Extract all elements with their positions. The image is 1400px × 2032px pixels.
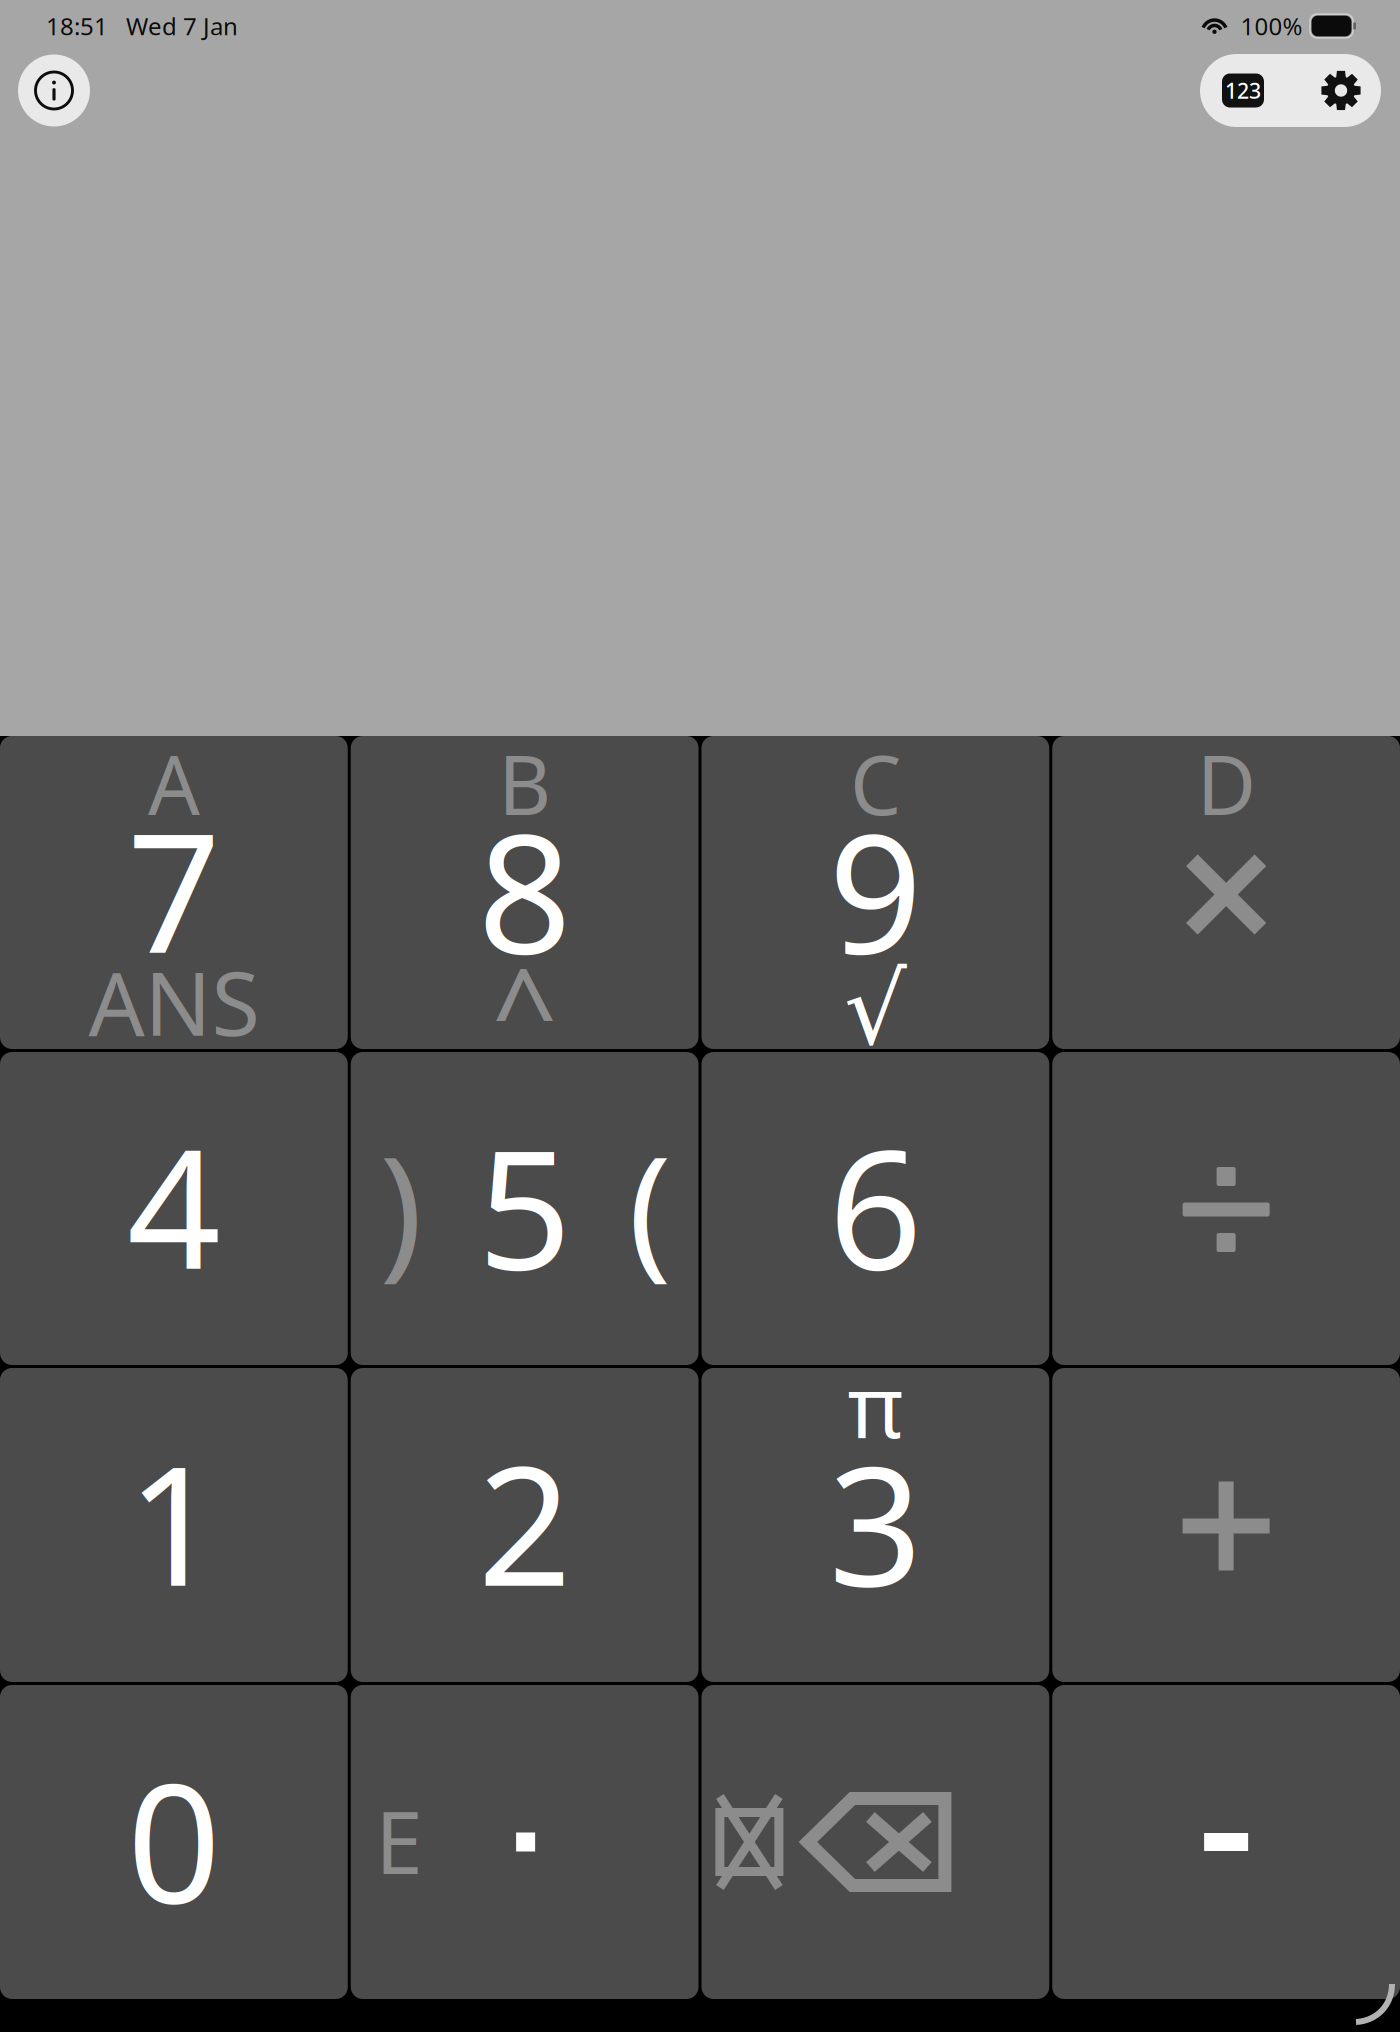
staticText: 9 xyxy=(828,781,922,998)
staticText: ^ xyxy=(492,931,558,1084)
staticText: ANS xyxy=(88,943,259,1060)
button[interactable]: Settings xyxy=(1321,70,1361,110)
button[interactable]: 6 xyxy=(701,1052,1049,1365)
button[interactable]: 5 xyxy=(351,1052,699,1365)
staticText: D xyxy=(1197,729,1256,837)
staticText: ) xyxy=(379,1110,422,1301)
staticText: B xyxy=(498,729,551,837)
staticText: ( xyxy=(628,1110,671,1301)
button[interactable]: 8 xyxy=(351,736,699,1049)
staticText: 123 xyxy=(1225,76,1261,105)
button[interactable]: Number pad xyxy=(1222,73,1264,107)
button[interactable]: 7 xyxy=(0,736,348,1049)
button[interactable]: Multiply xyxy=(1052,736,1400,1049)
staticText: A xyxy=(148,729,200,837)
button[interactable]: Minus xyxy=(1052,1685,1400,1999)
staticText: 1 xyxy=(127,1413,221,1631)
staticText: 3 xyxy=(828,1413,922,1631)
button[interactable]: 1 xyxy=(0,1368,348,1682)
button[interactable]: 4 xyxy=(0,1052,348,1365)
button[interactable]: 2 xyxy=(351,1368,699,1682)
staticText: 4 xyxy=(127,1097,221,1314)
staticText: 2 xyxy=(478,1413,572,1631)
button[interactable]: 9 xyxy=(701,736,1049,1049)
staticText: 18:51 Wed 7 Jan xyxy=(46,10,238,42)
button[interactable]: 0 xyxy=(0,1685,348,1999)
button[interactable]: Plus xyxy=(1052,1368,1400,1682)
staticText: √ xyxy=(844,953,907,1065)
button[interactable]: Info xyxy=(18,54,90,126)
button[interactable]: Decimal point xyxy=(351,1685,699,1999)
staticText: E xyxy=(375,1784,422,1898)
button[interactable]: Clear and delete xyxy=(701,1685,1049,1999)
staticText: 7 xyxy=(127,781,221,998)
staticText: 100% xyxy=(1228,10,1302,42)
staticText: 8 xyxy=(478,781,572,998)
button[interactable]: Divide xyxy=(1052,1052,1400,1365)
staticText: π xyxy=(847,1348,903,1462)
staticText: 5 xyxy=(478,1097,572,1314)
staticText: 0 xyxy=(127,1730,221,1948)
staticText: C xyxy=(850,729,901,837)
button[interactable]: 3 xyxy=(701,1368,1049,1682)
staticText: 6 xyxy=(828,1097,922,1314)
